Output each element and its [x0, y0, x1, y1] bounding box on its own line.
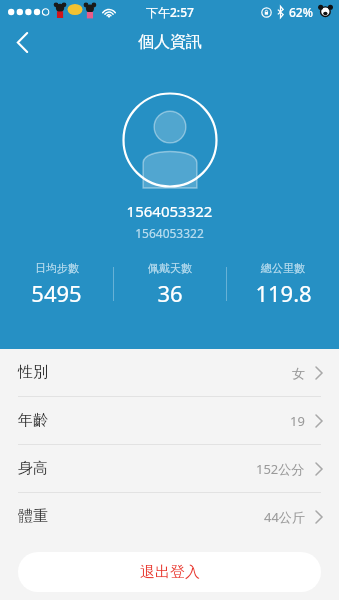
staticText: 1564053322 — [0, 201, 339, 221]
staticText: 44公斤 — [264, 508, 305, 526]
button[interactable]: Back — [0, 24, 44, 60]
staticText: 5495 — [31, 278, 82, 307]
staticText: 36 — [157, 278, 183, 307]
staticText: 性別 — [18, 363, 48, 382]
staticText: 1564053322 — [0, 225, 339, 241]
staticText: 19 — [290, 412, 305, 430]
staticText: 個人資訊 — [138, 32, 202, 52]
staticText: 日均步數 — [35, 261, 79, 275]
staticText: 年齡 — [18, 411, 48, 430]
button[interactable]: 性別 — [0, 349, 339, 396]
staticText: 總公里數 — [261, 261, 305, 275]
staticText: 女 — [292, 365, 305, 381]
staticText: 退出登入 — [140, 563, 200, 582]
staticText: 62% — [289, 4, 313, 20]
button[interactable]: 退出登入 — [18, 552, 321, 592]
button[interactable]: 身高 — [0, 445, 339, 492]
button[interactable]: 體重 — [0, 493, 339, 540]
staticText: 體重 — [18, 507, 48, 526]
button[interactable]: 年齡 — [0, 397, 339, 444]
staticText: 身高 — [18, 459, 48, 478]
staticText: 152公分 — [256, 460, 305, 478]
staticText: 119.8 — [255, 278, 312, 307]
staticText: 下午2:57 — [146, 4, 194, 20]
staticText: 佩戴天數 — [148, 261, 192, 275]
